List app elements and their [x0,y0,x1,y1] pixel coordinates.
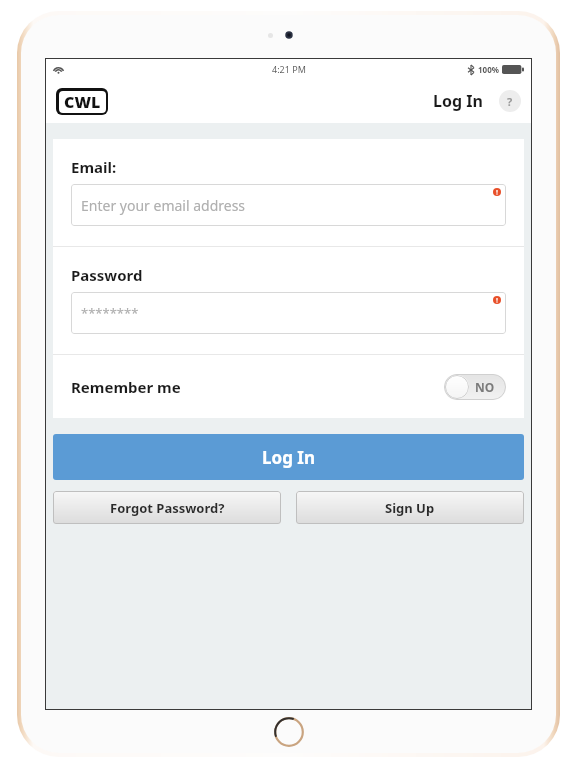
button[interactable]: Enter your email address [71,184,506,226]
button[interactable]: CWL home [56,88,108,115]
staticText: Log In [433,90,483,112]
staticText: Forgot Password? [110,499,225,517]
staticText: Enter your email address [81,196,246,215]
button[interactable]: Sign Up [296,491,524,524]
staticText: Password [71,265,143,285]
staticText: 4:21 PM [272,63,306,75]
staticText: CWL [64,91,101,113]
button[interactable]: Forgot Password? [53,491,281,524]
staticText: Remember me [71,377,181,397]
staticText: 100% [478,64,499,75]
button[interactable]: ******** [71,292,506,334]
button[interactable]: Log In [53,434,524,480]
staticText: Email: [71,157,117,177]
staticText: ? [507,94,513,109]
other: Remember me toggle, off [444,374,506,400]
staticText: ******** [81,304,139,322]
staticText: Sign Up [385,499,435,517]
staticText: NO [475,379,495,395]
staticText: Log In [262,446,315,469]
button[interactable]: Help [499,90,521,112]
button[interactable]: Remember me [53,355,524,418]
button[interactable]: Log In [429,84,487,118]
